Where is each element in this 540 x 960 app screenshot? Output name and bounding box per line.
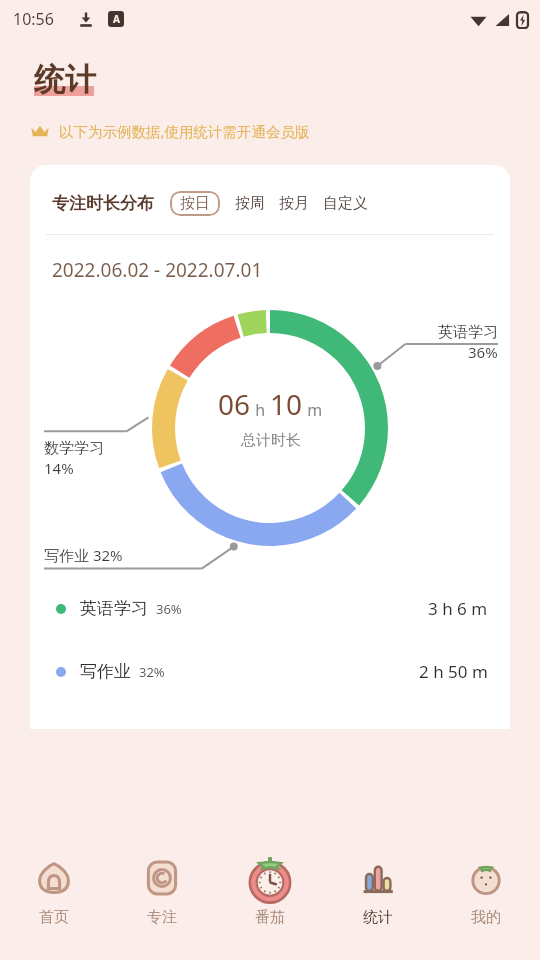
- staticText: 3 h 6 m: [428, 597, 488, 620]
- staticText: 2022.06.02 - 2022.07.01: [52, 257, 263, 283]
- button[interactable]: 自定义: [316, 189, 375, 218]
- staticText: 写作业: [80, 661, 131, 682]
- button[interactable]: 专注: [108, 842, 216, 960]
- staticText: 以下为示例数据,使用统计需开通会员版: [59, 121, 310, 141]
- staticText: m: [303, 399, 323, 421]
- other: 我的: [466, 858, 506, 898]
- staticText: 写作业 32%: [44, 545, 123, 565]
- staticText: 36%: [156, 600, 182, 618]
- staticText: 06: [218, 385, 251, 423]
- staticText: 我的: [471, 908, 501, 927]
- other: 统计: [358, 858, 398, 898]
- staticText: 统计: [34, 60, 96, 99]
- staticText: 专注: [147, 908, 177, 927]
- staticText: 首页: [39, 908, 69, 927]
- staticText: A: [113, 12, 120, 26]
- button[interactable]: 首页: [0, 842, 108, 960]
- staticText: 按月: [279, 194, 309, 213]
- staticText: 10:56: [13, 8, 54, 30]
- staticText: 英语学习: [438, 323, 498, 342]
- button[interactable]: 番茄: [216, 842, 324, 960]
- button[interactable]: 统计: [324, 842, 432, 960]
- other: 番茄: [242, 850, 298, 906]
- button[interactable]: 我的: [432, 842, 540, 960]
- staticText: 14%: [44, 458, 74, 478]
- staticText: 按日: [180, 194, 210, 213]
- button[interactable]: 写作业: [30, 660, 510, 683]
- staticText: 统计: [363, 908, 393, 927]
- button[interactable]: 按日: [170, 191, 220, 216]
- staticText: 按周: [235, 194, 265, 213]
- staticText: 总计时长: [241, 431, 301, 450]
- staticText: h: [251, 399, 270, 421]
- staticText: 英语学习: [80, 598, 148, 619]
- staticText: 32%: [139, 663, 165, 681]
- staticText: 番茄: [255, 908, 285, 927]
- other: 专注: [142, 858, 182, 898]
- staticText: 36%: [468, 342, 498, 362]
- staticText: 数学学习: [44, 439, 104, 458]
- other: 首页: [34, 858, 74, 898]
- button[interactable]: 英语学习: [30, 597, 510, 620]
- staticText: 专注时长分布: [52, 193, 154, 214]
- staticText: 自定义: [323, 194, 368, 213]
- button[interactable]: 按周: [228, 189, 272, 218]
- staticText: 2 h 50 m: [419, 660, 488, 683]
- button[interactable]: 按月: [272, 189, 316, 218]
- staticText: 10: [270, 385, 303, 423]
